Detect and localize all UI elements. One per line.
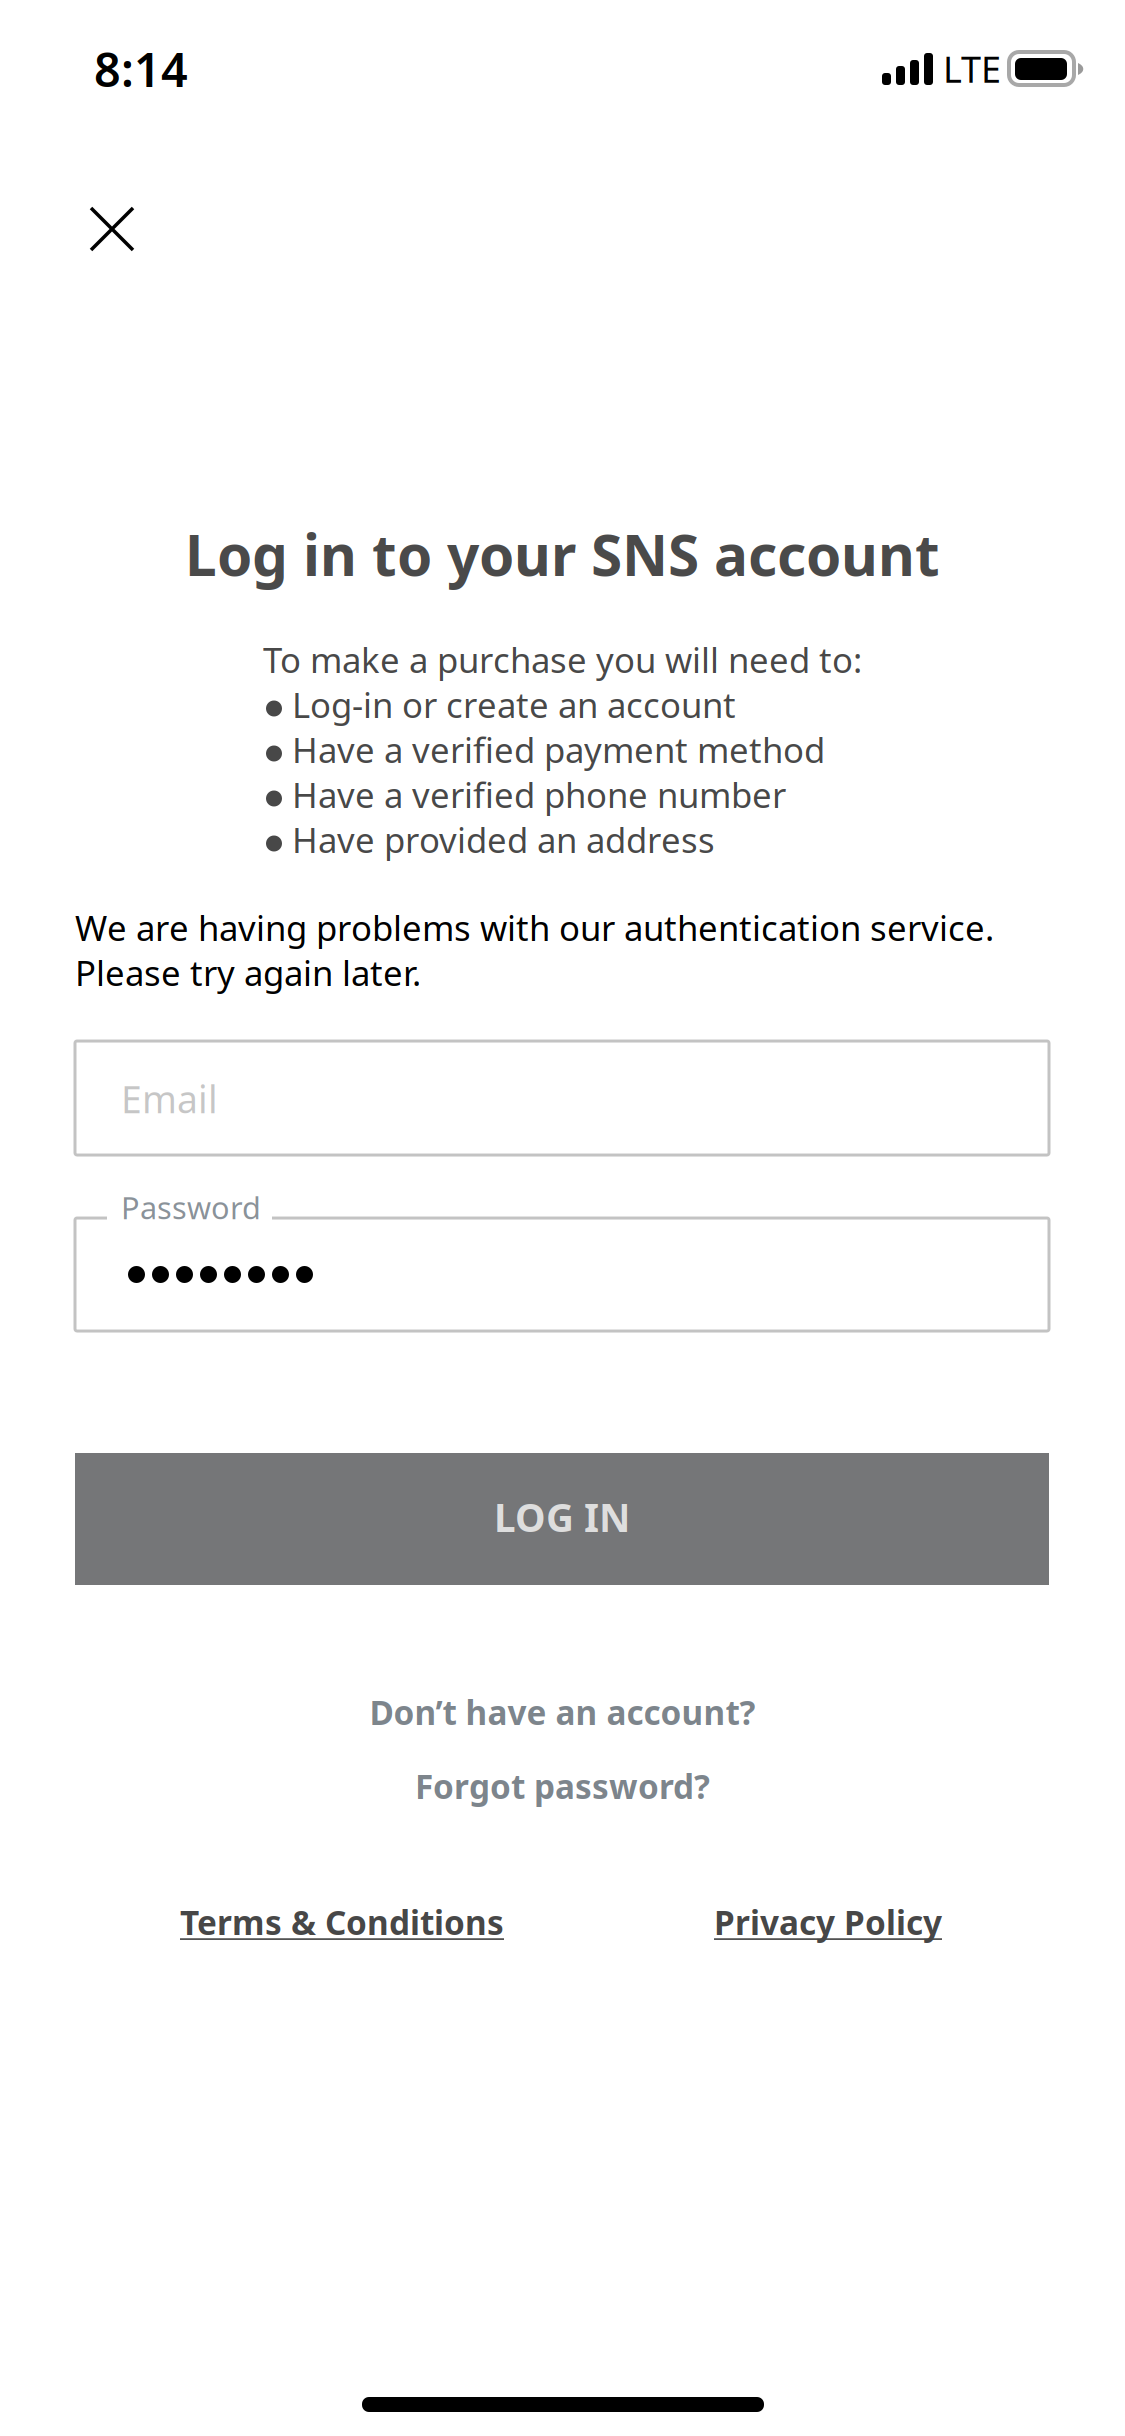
staticText: LTE [943,45,1001,93]
staticText: Please try again later. [75,949,421,995]
staticText: Have a verified phone number [292,771,786,817]
staticText: We are having problems with our authenti… [75,904,994,950]
button[interactable]: Forgot password? [0,1758,1125,1814]
staticText: Have provided an address [292,816,715,862]
button[interactable]: Don’t have an account? [0,1684,1125,1740]
staticText: To make a purchase you will need to: [263,636,862,682]
button[interactable]: Email [75,1041,1049,1155]
staticText: Have a verified payment method [292,726,825,772]
staticText: Password [121,1187,261,1228]
button[interactable]: Privacy Policy [714,1894,942,1950]
button[interactable]: Close [57,174,167,284]
staticText: Terms & Conditions [180,1900,504,1944]
staticText: Log in to your SNS account [185,515,940,593]
button[interactable]: Terms & Conditions [180,1894,504,1950]
staticText: Email [121,1074,218,1124]
button[interactable]: LOG IN [75,1453,1049,1585]
staticText: Forgot password? [415,1764,710,1808]
staticText: 8:14 [94,38,188,100]
button[interactable]: Password [75,1218,1049,1331]
staticText: Log-in or create an account [292,681,736,727]
staticText: Privacy Policy [714,1900,942,1944]
staticText: LOG IN [494,1491,630,1543]
staticText: Don’t have an account? [369,1690,755,1734]
